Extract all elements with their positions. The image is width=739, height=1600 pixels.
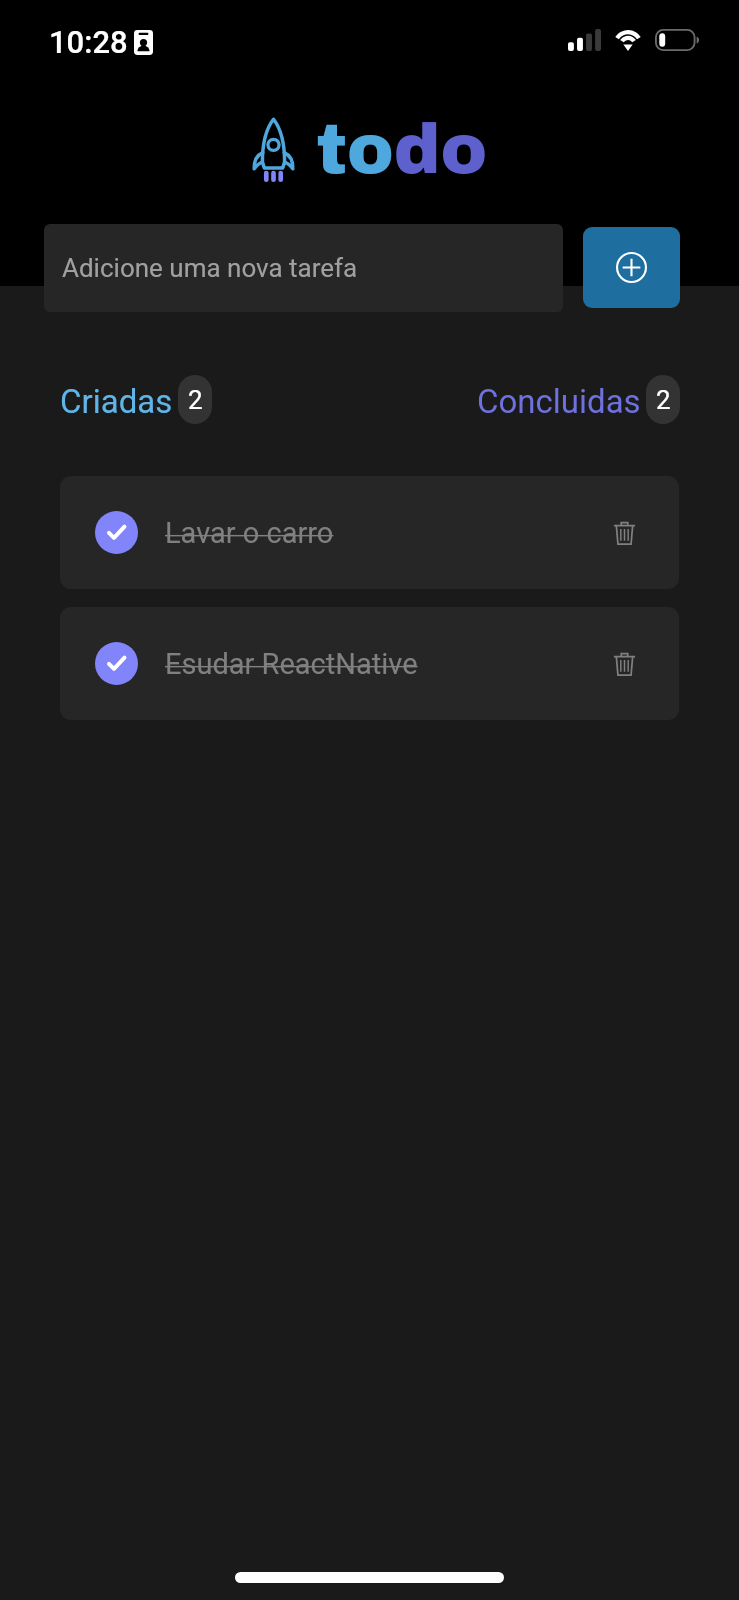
button[interactable]: Concluidas xyxy=(477,377,680,426)
button[interactable]: Delete task xyxy=(602,642,646,686)
button[interactable]: Mark task incomplete xyxy=(95,511,138,554)
staticText: todo xyxy=(316,112,488,188)
button[interactable]: Delete task xyxy=(602,511,646,555)
button[interactable]: Mark task incomplete xyxy=(95,642,138,685)
button[interactable]: Add task xyxy=(583,227,680,308)
staticText: Adicione uma nova tarefa xyxy=(62,253,358,283)
button[interactable]: Criadas xyxy=(60,377,212,426)
staticText: Lavar o carro xyxy=(165,516,602,550)
button[interactable]: Adicione uma nova tarefa xyxy=(44,224,563,312)
staticText: Esudar ReactNative xyxy=(165,647,602,681)
button[interactable]: Mark task incomplete xyxy=(60,476,679,589)
staticText: Criadas xyxy=(60,382,173,421)
staticText: 2 xyxy=(188,385,203,415)
staticText: 10:28 xyxy=(49,24,128,60)
staticText: Concluidas xyxy=(477,382,641,421)
button[interactable]: Mark task incomplete xyxy=(60,607,679,720)
staticText: 2 xyxy=(656,385,671,415)
